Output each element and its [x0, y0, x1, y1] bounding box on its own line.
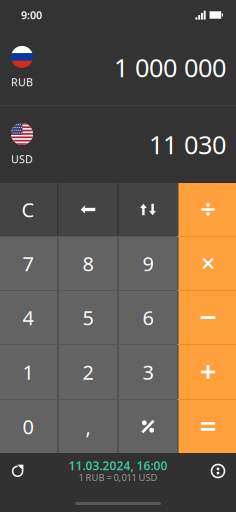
staticText: 9: [142, 250, 153, 277]
button[interactable]: Divide: [178, 183, 236, 236]
button[interactable]: Backspace: [58, 183, 117, 236]
button[interactable]: Refresh rates: [2, 456, 34, 486]
staticText: 3: [142, 359, 153, 385]
staticText: 1 RUB = 0,011 USD: [78, 471, 157, 484]
button[interactable]: Swap currencies: [118, 183, 177, 236]
button[interactable]: ,: [58, 400, 117, 453]
staticText: 2: [82, 359, 93, 385]
staticText: 11 030: [149, 128, 226, 161]
staticText: C: [21, 196, 34, 223]
button[interactable]: C: [0, 183, 57, 236]
button[interactable]: 9: [118, 237, 177, 290]
button[interactable]: Minus: [178, 291, 236, 344]
staticText: 7: [22, 250, 33, 277]
button[interactable]: More information: [202, 456, 234, 486]
staticText: ,: [85, 413, 90, 440]
button[interactable]: 3: [118, 345, 177, 399]
staticText: 8: [82, 250, 93, 277]
button[interactable]: Plus: [178, 345, 236, 399]
button[interactable]: Percent: [118, 400, 177, 453]
button[interactable]: RUB: [0, 37, 49, 97]
staticText: RUB: [11, 75, 33, 89]
button[interactable]: 2: [58, 345, 117, 399]
button[interactable]: USD: [0, 114, 49, 174]
staticText: 1: [22, 359, 33, 385]
staticText: 0: [22, 413, 33, 440]
staticText: 4: [22, 304, 33, 331]
button[interactable]: 5: [58, 291, 117, 344]
staticText: 1 000 000: [114, 51, 226, 84]
button[interactable]: 8: [58, 237, 117, 290]
staticText: 9:00: [21, 8, 42, 22]
staticText: USD: [11, 152, 33, 166]
button[interactable]: Multiply: [178, 237, 236, 290]
button[interactable]: 1: [0, 345, 57, 399]
staticText: 5: [82, 304, 93, 331]
button[interactable]: 4: [0, 291, 57, 344]
button[interactable]: 0: [0, 400, 57, 453]
button[interactable]: Equals: [178, 400, 236, 453]
staticText: 11.03.2024, 16:00: [68, 457, 167, 473]
button[interactable]: 6: [118, 291, 177, 344]
staticText: 6: [142, 304, 153, 331]
button[interactable]: 7: [0, 237, 57, 290]
